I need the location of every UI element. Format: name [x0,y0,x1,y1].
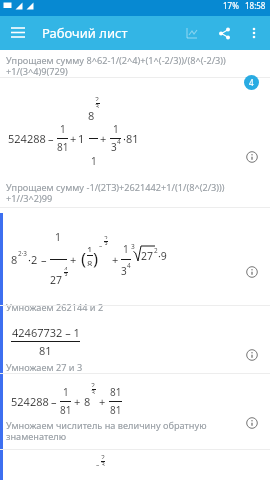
staticText: 42467732 – 1 [12,325,80,340]
staticText: 3 [121,264,127,278]
staticText: + [99,394,106,409]
staticText: 3 [101,460,105,466]
staticText: 1 [87,244,93,252]
staticText: 3 [111,140,117,154]
staticText: 1 [78,131,85,146]
staticText: Рабочий лист [42,24,128,42]
button[interactable]: Умножаем 262144 и 2 [6,301,104,314]
staticText: 81 [110,385,122,399]
staticText: 1 [63,385,69,399]
staticText: 1 [91,154,97,168]
button[interactable]: Информация [242,413,262,433]
button[interactable]: Умножаем числитель на величину обратную … [6,419,207,443]
staticText: + [70,131,77,146]
button[interactable]: Меню [6,21,30,45]
staticText: ·9 [158,249,167,263]
staticText: 27 [50,273,63,287]
staticText: 2 [95,95,100,101]
staticText: 4 [117,137,121,146]
staticText: + [70,252,77,267]
staticText: – [96,460,100,469]
staticText: ·81 [123,131,139,146]
staticText: 1 [123,242,129,256]
staticText: 8 [84,394,91,409]
button[interactable]: 4 [244,75,259,90]
button[interactable]: Поделиться [212,21,236,45]
staticText: – [48,131,54,146]
staticText: 1 [113,122,119,136]
staticText: 18:58 [245,0,266,11]
staticText: 17% [223,0,239,11]
staticText: 81 [39,343,52,358]
staticText: 3 [95,102,100,108]
staticText: 2 [104,234,108,239]
staticText: 3 [64,271,68,276]
button[interactable]: Упрощаем сумму -1/(2ТЗ)+2621442+1/(1/(8^… [6,181,225,205]
button[interactable]: Умножаем 27 и 3 [6,361,83,374]
staticText: – [99,241,103,250]
staticText: 2 [101,453,105,459]
staticText: 2 [91,381,96,387]
staticText: – [41,252,47,267]
staticText: ·2 [28,252,38,267]
staticText: 524288 [11,394,49,409]
staticText: 1 [55,230,62,244]
staticText: 2·3 [18,249,28,258]
button[interactable]: Ещё [242,21,266,45]
staticText: 8 [87,258,93,266]
button[interactable]: График [180,21,204,45]
button[interactable]: Упрощаем сумму 8^62-1/(2^4)+(1^(-2/3))/(… [6,54,226,78]
staticText: 81 [110,403,122,417]
button[interactable]: Информация [242,147,262,167]
staticText: + [112,252,119,267]
staticText: 81 [57,140,69,154]
staticText: 3 [104,240,108,245]
staticText: ( [81,247,87,270]
staticText: 4 [64,265,68,270]
staticText: 4 [249,77,254,88]
staticText: 2 [154,246,158,255]
staticText: 27 [141,249,154,263]
staticText: 8 [11,252,18,267]
staticText: 3 [131,242,135,251]
staticText: 8 [88,108,95,123]
staticText: + [100,131,107,146]
button[interactable]: Информация [242,262,262,282]
button[interactable]: Информация [242,345,262,365]
staticText: + [74,394,81,409]
staticText: 81 [60,403,72,417]
staticText: 3 [91,388,96,394]
staticText: ) [93,247,99,270]
staticText: – [51,394,57,409]
staticText: 4 [127,261,131,270]
staticText: 1 [60,122,66,136]
staticText: 524288 [8,131,46,146]
